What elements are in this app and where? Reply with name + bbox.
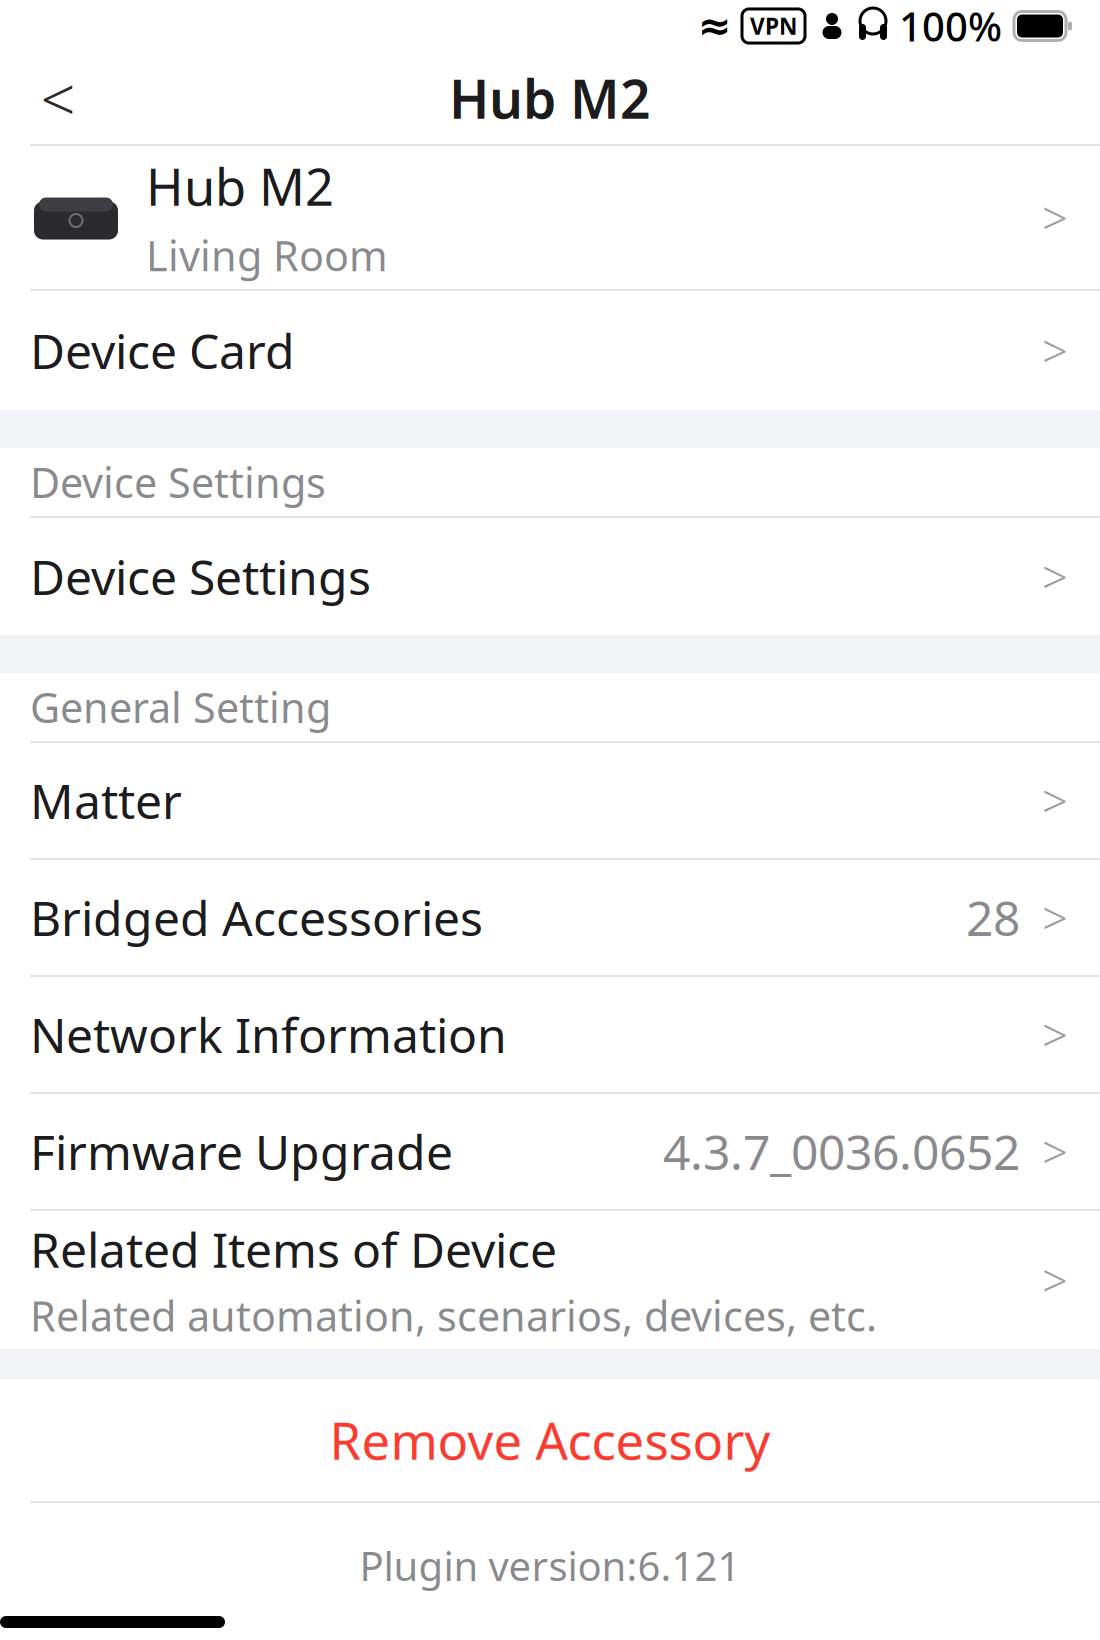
staticText: Hub M2 <box>449 63 651 133</box>
button[interactable]: Remove Accessory <box>0 1379 1100 1501</box>
staticText: > <box>1042 1004 1068 1065</box>
button[interactable]: Device Card <box>0 291 1100 410</box>
staticText: > <box>1042 546 1068 607</box>
staticText: 4.3.7_0036.0652 <box>663 1120 1020 1183</box>
staticText: Device Settings <box>30 455 326 509</box>
staticText: 28 <box>966 886 1020 949</box>
button[interactable]: Device Settings <box>0 518 1100 635</box>
staticText: Living Room <box>146 228 388 283</box>
staticText: Related automation, scenarios, devices, … <box>30 1288 877 1343</box>
staticText: > <box>1042 1121 1068 1182</box>
staticText: Device Card <box>30 319 295 382</box>
staticText: > <box>1042 887 1068 948</box>
staticText: > <box>1042 320 1068 381</box>
staticText: Plugin version:6.121 <box>359 1539 740 1592</box>
staticText: 100% <box>899 0 1002 52</box>
staticText: > <box>1042 187 1068 248</box>
staticText: Device Settings <box>30 545 371 608</box>
staticText: VPN <box>750 11 797 41</box>
button[interactable]: Back <box>18 58 98 138</box>
button[interactable]: Matter <box>0 743 1100 858</box>
staticText: Matter <box>30 769 182 832</box>
staticText: < <box>40 57 75 139</box>
button[interactable]: Hub M2 <box>0 146 1100 289</box>
button[interactable]: Bridged Accessories <box>0 860 1100 975</box>
button[interactable]: Related Items of Device <box>0 1211 1100 1349</box>
staticText: General Setting <box>30 680 331 734</box>
staticText: Hub M2 <box>146 152 334 220</box>
staticText: > <box>1042 1250 1068 1310</box>
button[interactable]: Firmware Upgrade <box>0 1094 1100 1209</box>
staticText: Related Items of Device <box>30 1217 557 1281</box>
staticText: ≈ <box>698 3 732 49</box>
button[interactable]: Network Information <box>0 977 1100 1092</box>
staticText: Firmware Upgrade <box>30 1120 453 1183</box>
staticText: Network Information <box>30 1003 507 1066</box>
staticText: Remove Accessory <box>329 1406 770 1474</box>
staticText: > <box>1042 770 1068 831</box>
staticText: Bridged Accessories <box>30 886 483 949</box>
